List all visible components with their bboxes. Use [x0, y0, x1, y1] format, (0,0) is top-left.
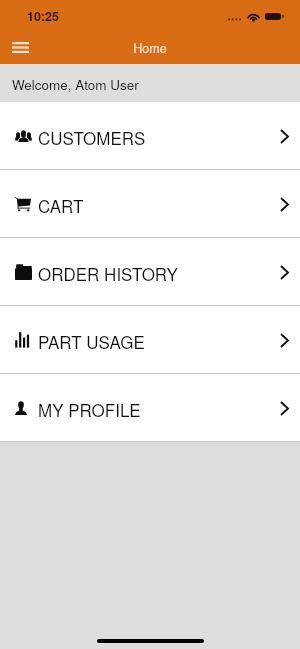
button[interactable]: CUSTOMERS [0, 102, 300, 169]
staticText: CART [38, 193, 84, 217]
staticText: MY PROFILE [38, 397, 141, 421]
button[interactable]: ORDER HISTORY [0, 238, 300, 305]
button[interactable]: MY PROFILE [0, 374, 300, 441]
staticText: Welcome, Atom User [12, 75, 139, 94]
button[interactable]: PART USAGE [0, 306, 300, 373]
staticText: PART USAGE [38, 329, 145, 353]
staticText: ORDER HISTORY [38, 261, 178, 285]
staticText: Home [133, 39, 167, 57]
staticText: CUSTOMERS [38, 125, 146, 149]
button[interactable]: CART [0, 170, 300, 237]
button[interactable]: Open navigation menu [6, 33, 35, 62]
staticText: 10:25 [27, 7, 59, 25]
